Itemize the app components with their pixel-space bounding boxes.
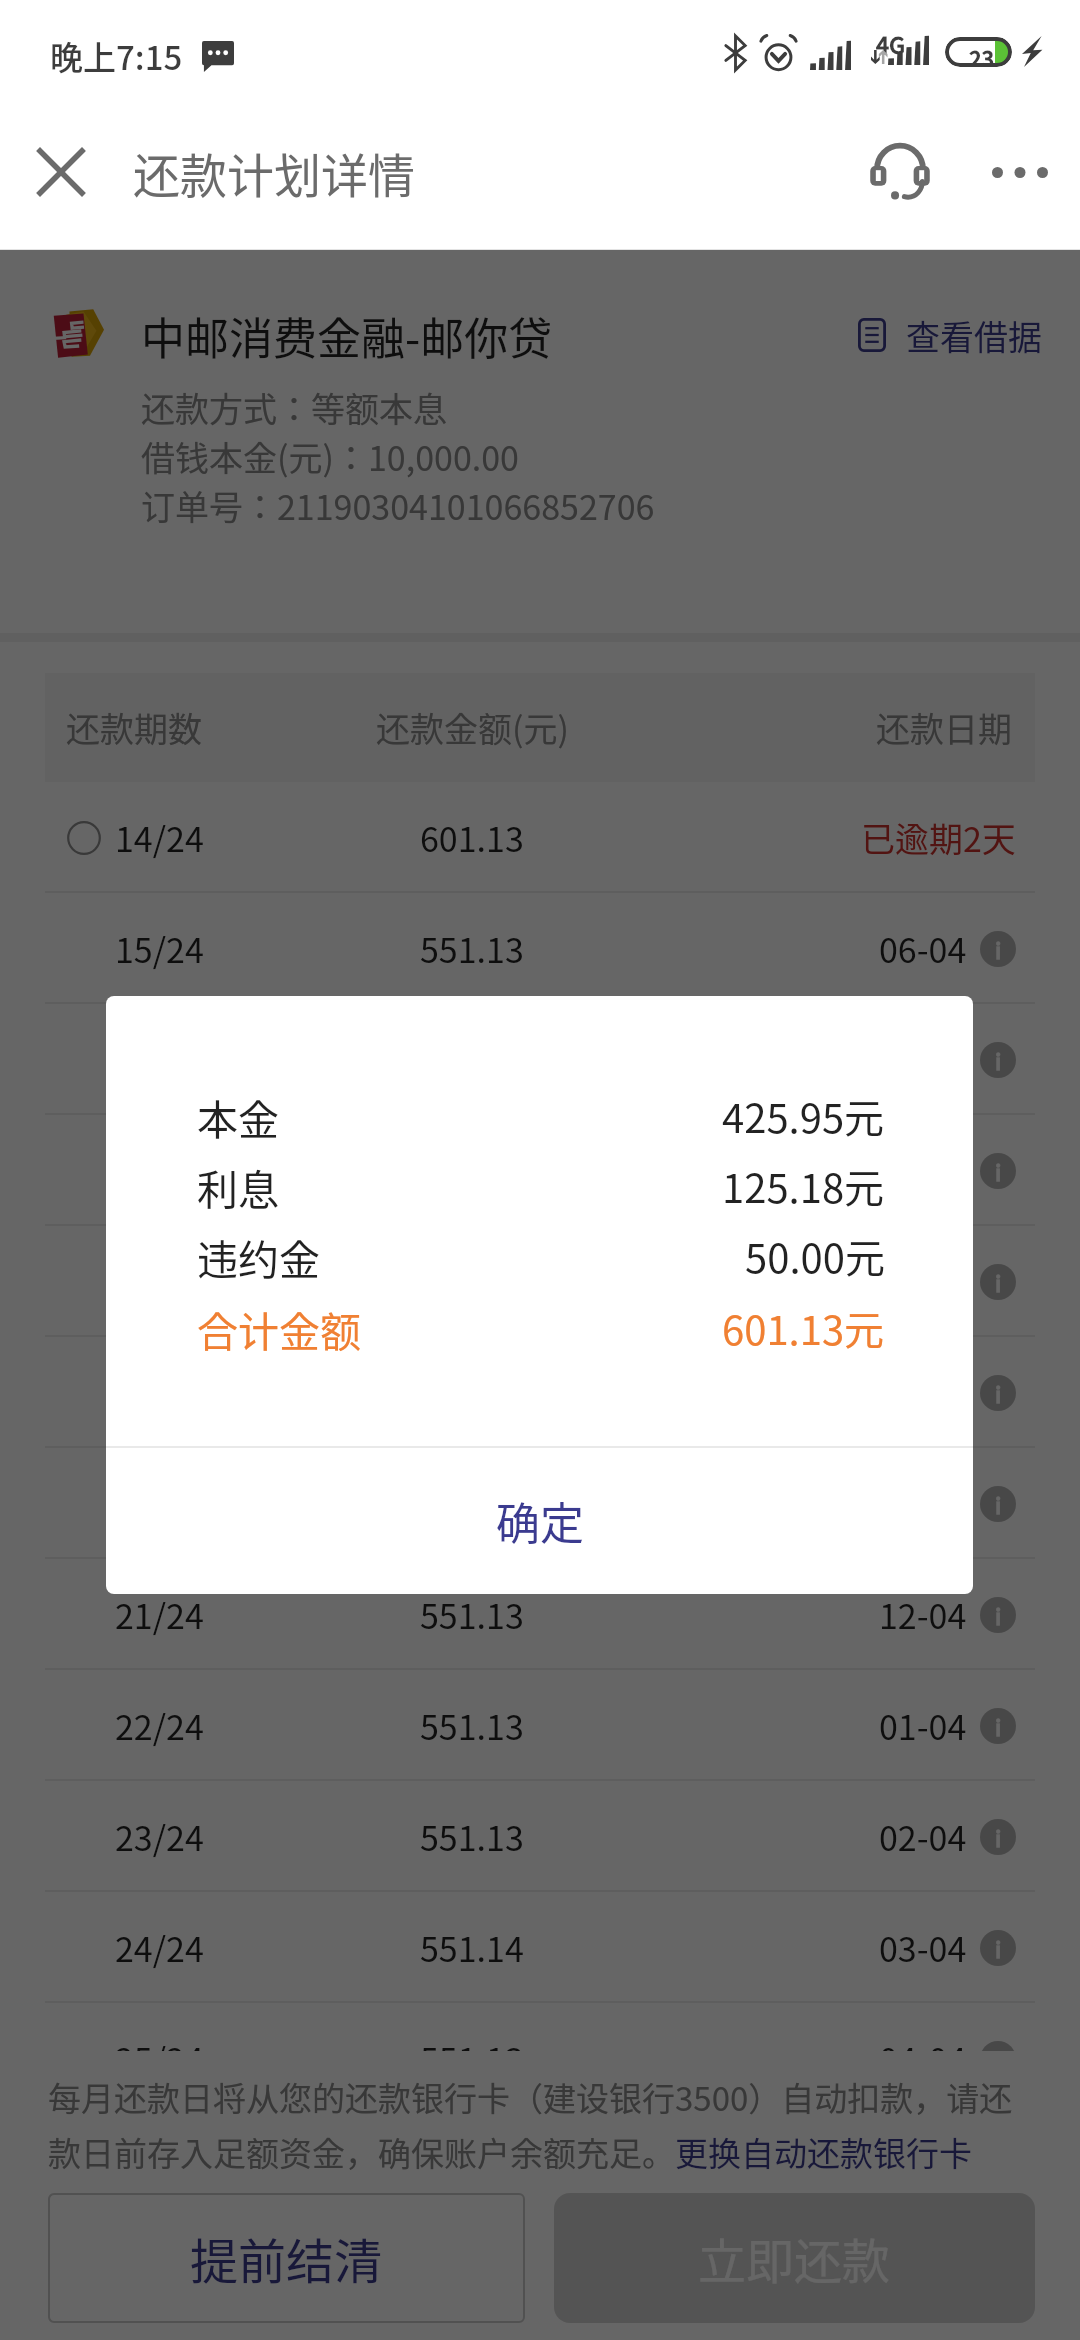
- staticText: i: [995, 1932, 1002, 1964]
- staticText: 已逾期2天: [861, 813, 1016, 862]
- staticText: 125.18元: [722, 1157, 885, 1215]
- staticText: 15/24: [115, 924, 204, 973]
- staticText: 合计金额: [197, 1299, 361, 1358]
- staticText: 601.13元: [722, 1299, 885, 1357]
- staticText: 还款计划详情: [133, 138, 415, 206]
- staticText: 09-04: [879, 1257, 967, 1306]
- staticText: 还款方式：等额本息: [141, 383, 447, 432]
- staticText: 还款金额(元): [376, 703, 569, 752]
- staticText: i: [995, 1377, 1002, 1409]
- button[interactable]: 14/24: [0, 782, 1080, 893]
- button[interactable]: 立即还款: [554, 2193, 1035, 2323]
- staticText: 还款期数: [66, 703, 202, 752]
- staticText: 18/24: [115, 1257, 204, 1306]
- button[interactable]: 23/24: [0, 1781, 1080, 1892]
- staticText: 03-04: [879, 1923, 967, 1972]
- staticText: 08-04: [879, 1146, 967, 1195]
- staticText: 每月还款日将从您的还款银行卡（建设银行3500）自动扣款，请还款日前存入足额资金…: [48, 2073, 1033, 2176]
- staticText: 还款日期: [876, 703, 1012, 752]
- staticText: 23/24: [115, 1812, 204, 1861]
- staticText: 14/24: [115, 813, 204, 862]
- staticText: 确定: [496, 1489, 584, 1553]
- staticText: 551.13: [420, 1479, 524, 1528]
- staticText: 01-04: [879, 1701, 967, 1750]
- staticText: 551.13: [420, 1701, 524, 1750]
- button[interactable]: 18/24: [0, 1226, 1080, 1337]
- staticText: 中邮消费金融-邮你贷: [141, 304, 553, 364]
- button[interactable]: 提前结清: [48, 2193, 525, 2323]
- staticText: 4G: [876, 27, 906, 60]
- staticText: 晚上7:15: [50, 32, 183, 80]
- staticText: 551.13: [420, 1812, 524, 1861]
- staticText: 601.13: [420, 813, 524, 862]
- staticText: 23: [969, 41, 995, 63]
- button[interactable]: 22/24: [0, 1670, 1080, 1781]
- button[interactable]: 16/24: [0, 1004, 1080, 1115]
- staticText: 06-04: [879, 924, 967, 973]
- staticText: 21/24: [115, 1590, 204, 1639]
- button[interactable]: 24/24: [0, 1892, 1080, 2003]
- staticText: 50.00元: [745, 1227, 885, 1285]
- button[interactable]: 21/24: [0, 1559, 1080, 1670]
- staticText: 违约金: [197, 1227, 320, 1286]
- staticText: i: [995, 933, 1002, 965]
- staticText: 本金: [197, 1087, 279, 1146]
- button[interactable]: 更多: [970, 126, 1070, 218]
- staticText: 25/24: [115, 2034, 204, 2051]
- staticText: 22/24: [115, 1701, 204, 1750]
- staticText: 02-04: [879, 1812, 967, 1861]
- staticText: 24/24: [115, 1923, 204, 1972]
- button[interactable]: 25/24: [0, 2003, 1080, 2051]
- button[interactable]: 15/24: [0, 893, 1080, 1004]
- staticText: 提前结清: [190, 2223, 383, 2293]
- staticText: 04-04: [879, 2034, 967, 2051]
- staticText: 利息: [197, 1157, 279, 1216]
- staticText: 551.14: [420, 1923, 524, 1972]
- staticText: 425.95元: [722, 1087, 885, 1145]
- staticText: 借钱本金(元)：10,000.00: [141, 432, 519, 481]
- staticText: i: [995, 1710, 1002, 1742]
- staticText: 立即还款: [698, 2223, 891, 2293]
- button[interactable]: 20/24: [0, 1448, 1080, 1559]
- staticText: i: [995, 1044, 1002, 1076]
- button[interactable]: 17/24: [0, 1115, 1080, 1226]
- staticText: i: [995, 1599, 1002, 1631]
- button[interactable]: 关闭: [16, 126, 106, 218]
- staticText: 551.13: [420, 2034, 524, 2051]
- button[interactable]: 客服: [850, 126, 950, 218]
- staticText: 12-04: [879, 1590, 967, 1639]
- staticText: i: [995, 1266, 1002, 1298]
- staticText: 17/24: [115, 1146, 204, 1195]
- staticText: 551.13: [420, 924, 524, 973]
- staticText: i: [995, 1821, 1002, 1853]
- staticText: i: [995, 1488, 1002, 1520]
- button[interactable]: 确定: [106, 1448, 973, 1594]
- staticText: 551.13: [420, 1590, 524, 1639]
- staticText: 查看借据: [906, 311, 1042, 360]
- button[interactable]: 19/24: [0, 1337, 1080, 1448]
- staticText: i: [995, 1155, 1002, 1187]
- staticText: 订单号：21190304101066852706: [141, 481, 655, 530]
- button[interactable]: 查看借据: [858, 310, 1042, 360]
